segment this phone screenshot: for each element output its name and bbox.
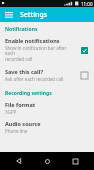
button[interactable]: Unchecked xyxy=(80,71,89,80)
button[interactable]: Recent apps xyxy=(66,152,84,170)
staticText: Enable notifications xyxy=(5,37,60,44)
staticText: Save this call? xyxy=(5,68,44,75)
staticText: Recording settings xyxy=(5,90,52,97)
staticText: 11:00 xyxy=(81,1,93,7)
staticText: Show in notification bar after each reco… xyxy=(5,45,77,63)
staticText: 3GPP xyxy=(5,109,17,115)
staticText: Phone line xyxy=(5,128,28,134)
button[interactable]: Home xyxy=(38,152,56,170)
button[interactable]: Audio source xyxy=(0,117,94,136)
button[interactable]: Save this call? xyxy=(0,65,94,84)
button[interactable]: Checked xyxy=(80,46,89,55)
button[interactable]: Enable notifications xyxy=(0,34,94,65)
staticText: Settings xyxy=(20,10,48,20)
staticText: Audio source xyxy=(5,120,41,127)
button[interactable]: Open navigation menu xyxy=(3,9,15,21)
staticText: Ask after each recorded call xyxy=(5,76,64,82)
button[interactable]: Back xyxy=(10,152,28,170)
staticText: File format xyxy=(5,101,36,108)
staticText: Notifications xyxy=(5,26,38,33)
button[interactable]: File format xyxy=(0,98,94,117)
